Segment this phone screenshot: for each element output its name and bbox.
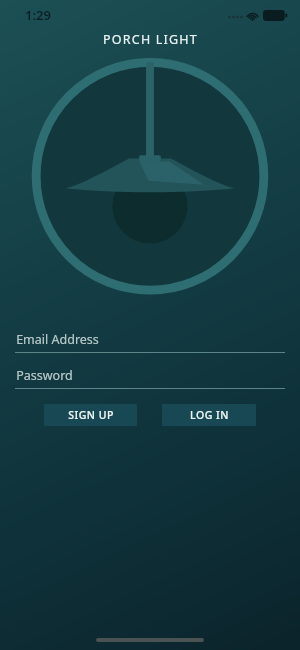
button[interactable]: SIGN UP bbox=[44, 404, 137, 426]
other: Battery bbox=[263, 10, 288, 21]
staticText: 1:29 bbox=[25, 6, 51, 24]
staticText: Password bbox=[16, 367, 73, 384]
button[interactable]: Email Address bbox=[0, 326, 300, 353]
staticText: SIGN UP bbox=[68, 408, 114, 422]
staticText: PORCH LIGHT bbox=[103, 31, 198, 48]
other: Wi-Fi bbox=[246, 11, 259, 21]
button[interactable]: LOG IN bbox=[162, 404, 256, 426]
staticText: Email Address bbox=[16, 331, 99, 348]
button[interactable]: Password bbox=[0, 362, 300, 389]
other: Signal bbox=[228, 11, 243, 20]
staticText: LOG IN bbox=[190, 408, 229, 422]
